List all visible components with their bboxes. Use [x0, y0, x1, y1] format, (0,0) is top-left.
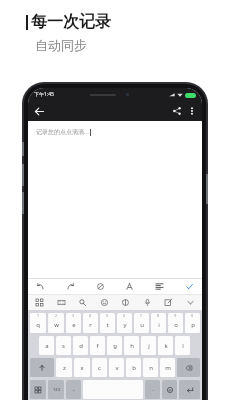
button[interactable]: Edit: [162, 296, 175, 309]
button[interactable]: m: [160, 358, 175, 377]
button[interactable]: x: [74, 358, 90, 377]
staticText: f: [96, 342, 99, 350]
staticText: 9: [174, 313, 177, 318]
button[interactable]: g: [107, 336, 122, 355]
button[interactable]: Redo: [64, 280, 77, 293]
button[interactable]: f: [90, 336, 105, 355]
button[interactable]: 2: [48, 313, 64, 333]
staticText: z: [63, 364, 66, 372]
staticText: d: [79, 342, 83, 350]
button[interactable]: h: [124, 336, 139, 355]
button[interactable]: 3: [66, 313, 81, 333]
staticText: 自动同步: [35, 37, 87, 53]
button[interactable]: Keyboard: [55, 296, 68, 309]
staticText: c: [98, 364, 101, 372]
button[interactable]: Grid: [33, 296, 46, 309]
button[interactable]: 8: [151, 313, 166, 333]
staticText: q: [36, 321, 40, 329]
button[interactable]: Voice: [141, 296, 154, 309]
staticText: 0: [191, 313, 194, 318]
staticText: h: [130, 342, 134, 350]
button[interactable]: d: [73, 336, 88, 355]
button[interactable]: 5: [100, 313, 115, 333]
staticText: 2: [55, 313, 58, 318]
staticText: t: [106, 321, 109, 329]
button[interactable]: Text style: [123, 280, 136, 293]
staticText: a: [45, 342, 49, 350]
staticText: 8: [157, 313, 160, 318]
staticText: 7: [140, 313, 143, 318]
button[interactable]: Undo: [34, 280, 47, 293]
staticText: k: [164, 342, 168, 350]
staticText: 5: [106, 313, 109, 318]
button[interactable]: Done: [183, 280, 196, 293]
button[interactable]: l: [175, 336, 190, 355]
button[interactable]: k: [158, 336, 173, 355]
button[interactable]: Emoji: [162, 380, 177, 399]
staticText: g: [113, 342, 117, 350]
button[interactable]: s: [56, 336, 71, 355]
staticText: e: [72, 321, 76, 329]
staticText: m: [165, 364, 171, 372]
button[interactable]: c: [92, 358, 107, 377]
staticText: b: [132, 364, 136, 372]
button[interactable]: Align: [153, 280, 166, 293]
staticText: i: [158, 321, 160, 329]
button[interactable]: Shift: [30, 358, 54, 377]
button[interactable]: b: [126, 358, 141, 377]
button[interactable]: 1: [30, 313, 46, 333]
staticText: 下午1:45: [34, 91, 54, 98]
staticText: j: [148, 342, 150, 350]
staticText: y: [123, 321, 127, 329]
staticText: x: [80, 364, 84, 372]
button[interactable]: 123: [48, 380, 64, 399]
button[interactable]: 9: [168, 313, 183, 333]
button[interactable]: 4: [83, 313, 98, 333]
staticText: n: [149, 364, 153, 372]
button[interactable]: j: [141, 336, 156, 355]
staticText: 123: [53, 387, 60, 392]
staticText: s: [62, 342, 65, 350]
staticText: u: [140, 321, 144, 329]
button[interactable]: More options: [185, 104, 199, 118]
staticText: v: [115, 364, 119, 372]
button[interactable]: Back: [31, 103, 47, 119]
button[interactable]: n: [143, 358, 158, 377]
staticText: r: [89, 321, 92, 329]
button[interactable]: a: [39, 336, 54, 355]
staticText: 6: [123, 313, 126, 318]
staticText: 1: [37, 313, 40, 318]
button[interactable]: ,: [66, 380, 81, 399]
staticText: 每一次记录: [31, 12, 111, 32]
staticText: .: [152, 386, 154, 393]
button[interactable]: 0: [185, 313, 200, 333]
staticText: 4: [89, 313, 92, 318]
staticText: p: [191, 321, 195, 329]
staticText: o: [174, 321, 178, 329]
button[interactable]: Language: [30, 380, 46, 399]
button[interactable]: Share: [169, 103, 185, 119]
button[interactable]: Enter: [179, 380, 200, 399]
button[interactable]: Collapse: [184, 296, 197, 309]
staticText: w: [54, 321, 59, 329]
button[interactable]: z: [56, 358, 72, 377]
button[interactable]: Emoji: [98, 296, 111, 309]
button[interactable]: 7: [134, 313, 149, 333]
button[interactable]: Clear format: [94, 280, 107, 293]
staticText: ,: [73, 386, 75, 393]
staticText: l: [182, 342, 184, 350]
button[interactable]: Translate: [119, 296, 132, 309]
staticText: 记录您的点点滴滴...: [36, 128, 89, 136]
button[interactable]: Backspace: [177, 358, 200, 377]
button[interactable]: v: [109, 358, 124, 377]
button[interactable]: Search: [76, 296, 89, 309]
staticText: 3: [72, 313, 75, 318]
button[interactable]: 6: [117, 313, 132, 333]
